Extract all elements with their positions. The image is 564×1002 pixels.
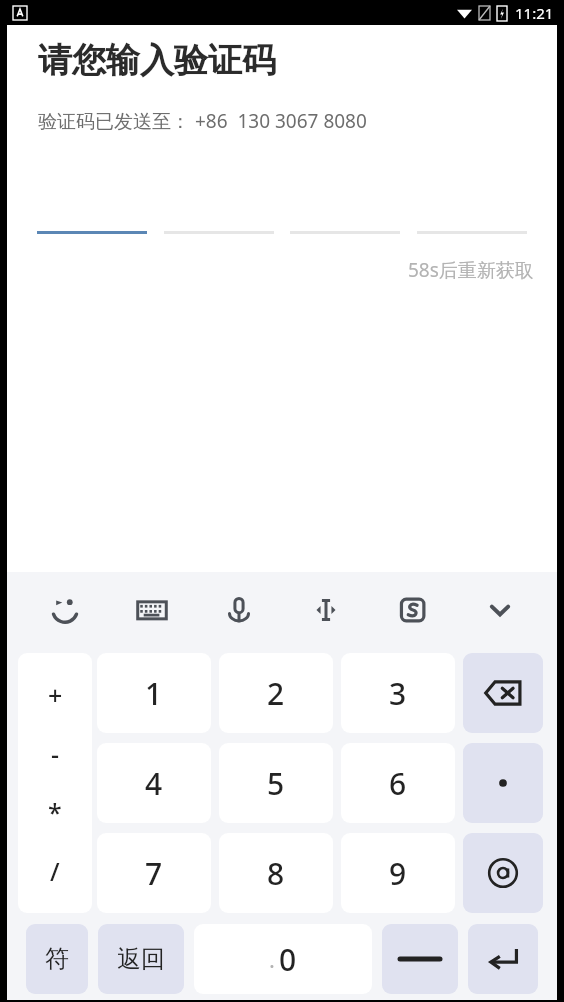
- button[interactable]: 1: [97, 653, 211, 733]
- staticText: /: [50, 854, 60, 888]
- button[interactable]: Emoji: [21, 572, 108, 648]
- button[interactable]: Backspace: [463, 653, 543, 733]
- staticText: 5: [267, 763, 285, 804]
- button[interactable]: Space: [382, 924, 458, 994]
- button[interactable]: 5: [219, 743, 333, 823]
- staticText: 符: [45, 944, 69, 974]
- button[interactable]: Move cursor: [282, 572, 369, 648]
- button[interactable]: Enter: [468, 924, 538, 994]
- button[interactable]: 7: [97, 833, 211, 913]
- staticText: 7: [145, 853, 163, 894]
- button[interactable]: Dot: [463, 743, 543, 823]
- staticText: ·: [269, 950, 275, 980]
- button[interactable]: 返回: [98, 924, 184, 994]
- button[interactable]: 8: [219, 833, 333, 913]
- staticText: *: [48, 795, 62, 829]
- staticText: 1: [145, 673, 163, 714]
- button[interactable]: ·: [194, 924, 372, 994]
- button[interactable]: 58s后重新获取: [408, 257, 534, 283]
- button[interactable]: 3: [341, 653, 455, 733]
- staticText: 验证码已发送至： +86 130 3067 8080: [38, 108, 367, 134]
- button[interactable]: Hide keyboard: [456, 572, 543, 648]
- button[interactable]: 9: [341, 833, 455, 913]
- staticText: 返回: [117, 944, 165, 974]
- button[interactable]: Voice input: [195, 572, 282, 648]
- staticText: -: [51, 737, 60, 771]
- staticText: +: [48, 678, 63, 712]
- staticText: 0: [279, 939, 297, 980]
- button[interactable]: 6: [341, 743, 455, 823]
- button[interactable]: Sogou: [369, 572, 456, 648]
- button[interactable]: Keyboard: [108, 572, 195, 648]
- staticText: 6: [389, 763, 407, 804]
- staticText: 11:21: [515, 3, 554, 23]
- staticText: 8: [267, 853, 285, 894]
- button[interactable]: 符: [26, 924, 88, 994]
- button[interactable]: 2: [219, 653, 333, 733]
- staticText: 3: [389, 673, 407, 714]
- staticText: 4: [145, 763, 163, 804]
- staticText: 请您输入验证码: [38, 39, 276, 82]
- staticText: 9: [389, 853, 407, 894]
- button[interactable]: At sign: [463, 833, 543, 913]
- button[interactable]: 4: [97, 743, 211, 823]
- staticText: 2: [267, 673, 285, 714]
- button[interactable]: +: [18, 653, 92, 913]
